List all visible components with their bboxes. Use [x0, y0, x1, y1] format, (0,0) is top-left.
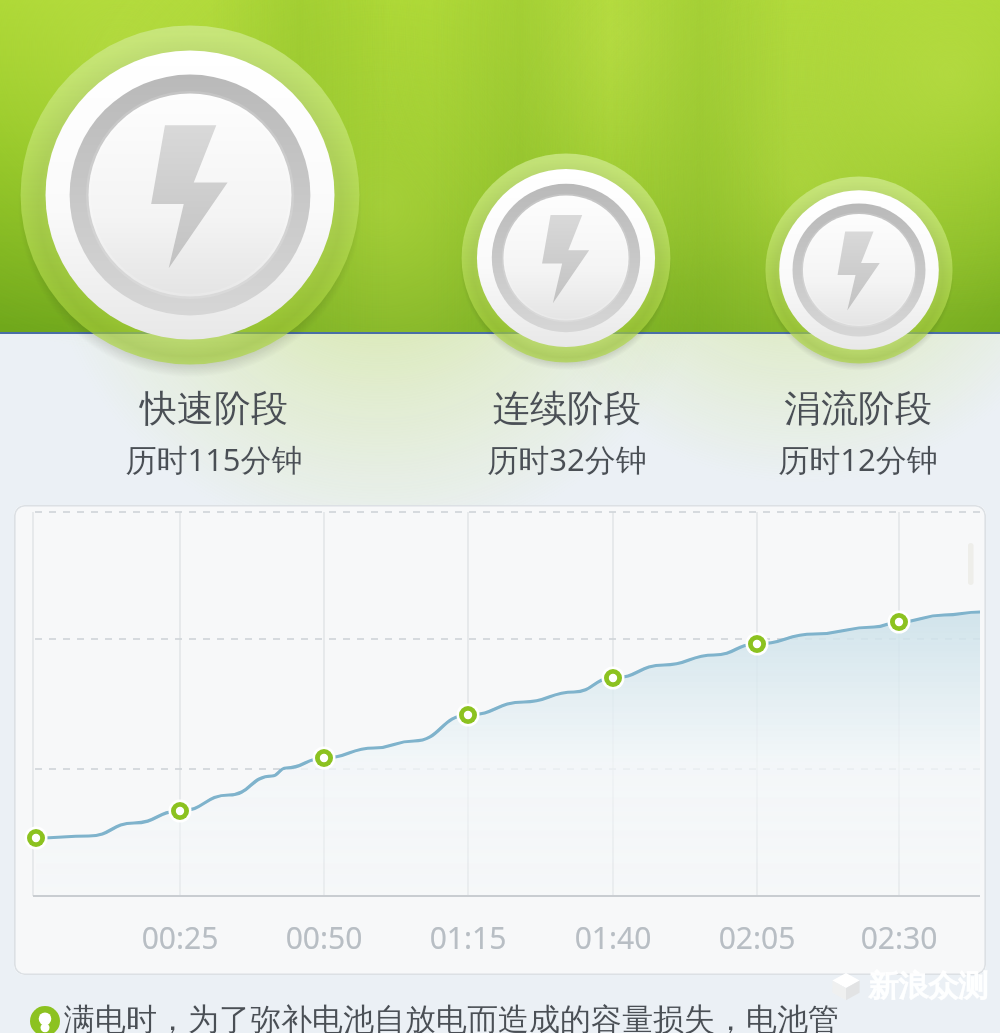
staticText: 历时115分钟: [54, 438, 374, 480]
staticText: 连续阶段: [407, 385, 727, 432]
staticText: 00:50: [264, 917, 384, 958]
button[interactable]: 快速阶段: [18, 23, 362, 367]
staticText: 历时32分钟: [407, 438, 727, 480]
staticText: 01:15: [408, 917, 528, 958]
button[interactable]: 00:25: [14, 505, 986, 975]
staticText: 01:40: [553, 917, 673, 958]
button[interactable]: 快速阶段: [54, 385, 374, 480]
button[interactable]: 满电时，为了弥补电池自放电而造成的容量损失，电池管: [30, 1000, 1000, 1033]
staticText: 02:30: [839, 917, 959, 958]
button[interactable]: 连续阶段: [407, 385, 727, 480]
button[interactable]: 连续阶段: [460, 152, 672, 364]
staticText: 00:25: [120, 917, 240, 958]
staticText: 新浪众测: [868, 967, 988, 1005]
button[interactable]: 涓流阶段: [698, 385, 1000, 480]
staticText: 02:05: [697, 917, 817, 958]
staticText: 满电时，为了弥补电池自放电而造成的容量损失，电池管: [64, 1000, 839, 1033]
staticText: 涓流阶段: [698, 385, 1000, 432]
staticText: 历时12分钟: [698, 438, 1000, 480]
button[interactable]: 涓流阶段: [764, 175, 954, 365]
staticText: 快速阶段: [54, 385, 374, 432]
